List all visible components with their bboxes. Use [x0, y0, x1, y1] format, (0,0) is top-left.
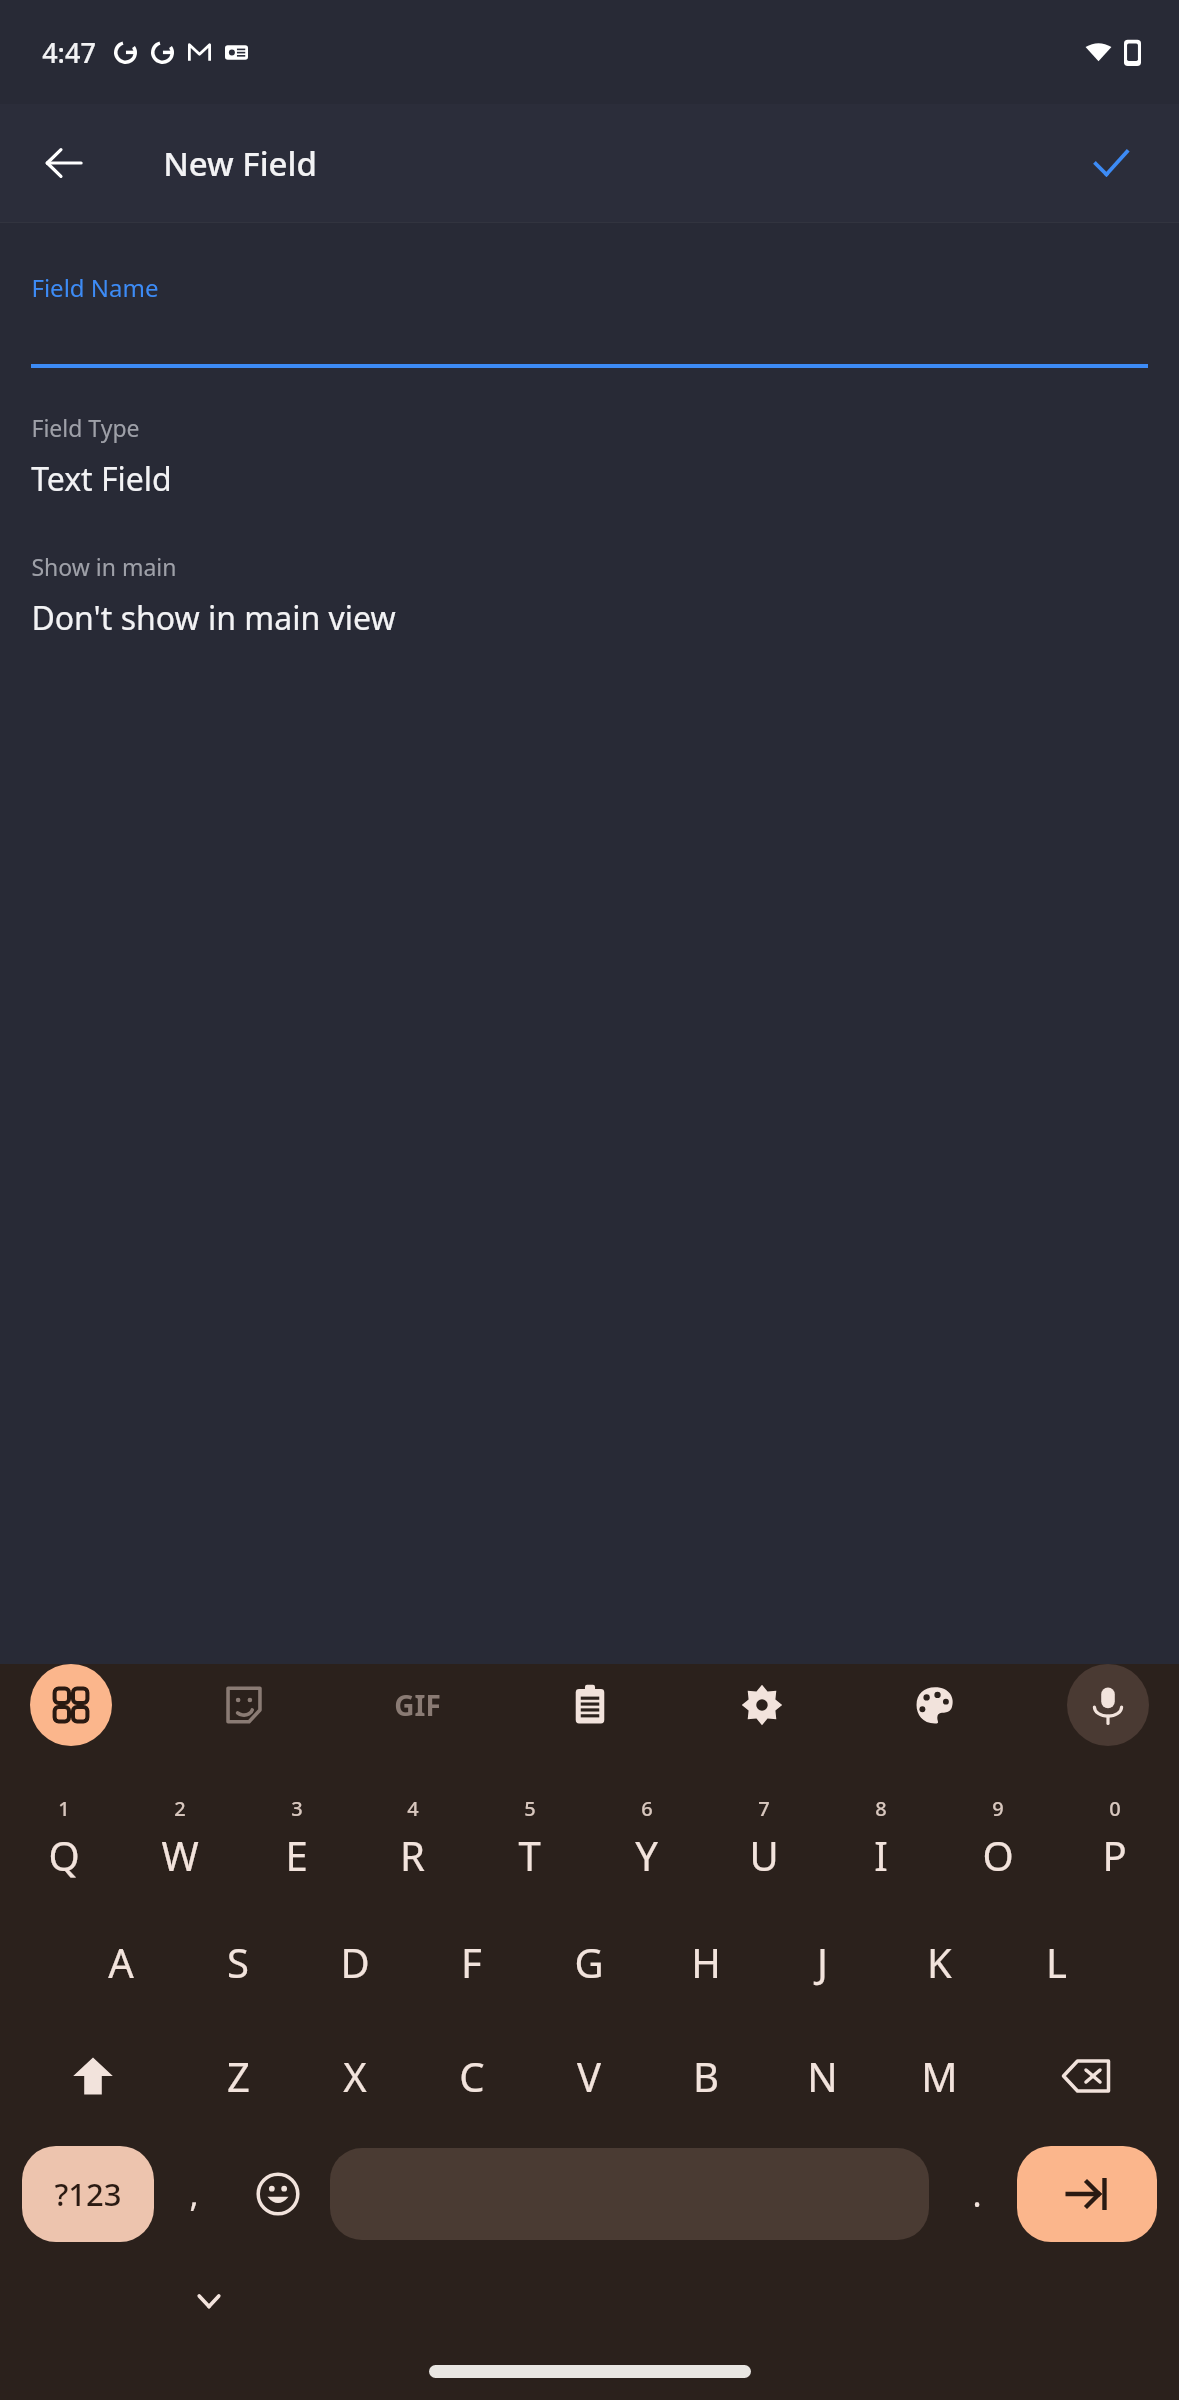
button[interactable]: 6 — [588, 1782, 705, 1894]
button[interactable]: Comma — [154, 2142, 234, 2246]
button[interactable]: Enter — [1017, 2146, 1157, 2242]
button[interactable]: Sticker — [203, 1664, 285, 1746]
staticText: N — [807, 2049, 838, 2103]
button[interactable]: Field Type — [31, 412, 1148, 501]
staticText: G — [574, 1935, 604, 1989]
staticText: 0 — [1109, 1795, 1121, 1822]
button[interactable]: G — [530, 1916, 647, 2008]
button[interactable]: F — [413, 1916, 530, 2008]
staticText: U — [749, 1828, 779, 1882]
button[interactable]: 4 — [354, 1782, 471, 1894]
button[interactable]: Theme — [894, 1664, 976, 1746]
staticText: O — [982, 1828, 1014, 1882]
staticText: A — [108, 1935, 134, 1989]
button[interactable]: X — [296, 2030, 413, 2122]
button[interactable]: C — [413, 2030, 530, 2122]
staticText: Text Field — [31, 457, 172, 501]
staticText: V — [577, 2049, 601, 2103]
button[interactable]: A — [63, 1916, 179, 2008]
staticText: D — [340, 1935, 370, 1989]
staticText: . — [972, 2171, 982, 2217]
staticText: T — [518, 1828, 541, 1882]
button[interactable]: Shift — [6, 2030, 180, 2122]
staticText: C — [459, 2049, 485, 2103]
staticText: F — [461, 1935, 482, 1989]
staticText: S — [227, 1935, 249, 1989]
staticText: 9 — [992, 1795, 1004, 1822]
staticText: E — [285, 1828, 308, 1882]
button[interactable]: 1 — [6, 1782, 122, 1894]
button[interactable]: Emoji — [234, 2142, 322, 2246]
staticText: Q — [48, 1828, 80, 1882]
button[interactable]: Save — [1075, 127, 1147, 199]
button[interactable]: Hide keyboard — [180, 2272, 238, 2330]
staticText: 7 — [758, 1795, 770, 1822]
staticText: 8 — [875, 1795, 887, 1822]
staticText: 1 — [58, 1795, 70, 1822]
button[interactable]: 0 — [1056, 1782, 1173, 1894]
staticText: Field Name — [31, 271, 159, 304]
button[interactable]: Toolbox — [30, 1664, 112, 1746]
button[interactable]: Back — [28, 127, 100, 199]
button[interactable]: 3 — [238, 1782, 354, 1894]
staticText: Show in main — [31, 551, 177, 582]
button[interactable]: ?123 — [22, 2146, 154, 2242]
staticText: ?123 — [54, 2173, 122, 2215]
button[interactable]: 2 — [122, 1782, 238, 1894]
staticText: Field Type — [31, 412, 140, 443]
button[interactable]: 7 — [705, 1782, 822, 1894]
staticText: X — [343, 2049, 367, 2103]
button[interactable]: Backspace — [998, 2030, 1173, 2122]
staticText: Y — [635, 1828, 658, 1882]
staticText: L — [1046, 1935, 1067, 1989]
staticText: W — [161, 1828, 199, 1882]
staticText: 3 — [291, 1795, 303, 1822]
button[interactable]: H — [647, 1916, 764, 2008]
staticText: I — [874, 1828, 888, 1882]
staticText: Z — [227, 2049, 250, 2103]
button[interactable]: Field Name — [31, 271, 1148, 368]
button[interactable]: Space — [330, 2148, 929, 2240]
staticText: J — [817, 1935, 828, 1989]
button[interactable]: B — [647, 2030, 764, 2122]
button[interactable]: V — [530, 2030, 647, 2122]
staticText: , — [189, 2171, 199, 2217]
button[interactable]: Z — [180, 2030, 296, 2122]
button[interactable]: J — [764, 1916, 881, 2008]
button[interactable]: S — [179, 1916, 296, 2008]
button[interactable]: Settings — [721, 1664, 803, 1746]
staticText: P — [1102, 1828, 1127, 1882]
button[interactable]: 8 — [822, 1782, 939, 1894]
staticText: 2 — [174, 1795, 186, 1822]
button[interactable]: Period — [937, 2142, 1017, 2246]
staticText: 5 — [524, 1795, 536, 1822]
staticText: M — [921, 2049, 958, 2103]
button[interactable]: GIF — [376, 1664, 458, 1746]
staticText: K — [927, 1935, 952, 1989]
staticText: Don't show in main view — [31, 596, 396, 640]
staticText: 4 — [407, 1795, 419, 1822]
button[interactable]: N — [764, 2030, 881, 2122]
staticText: 6 — [641, 1795, 653, 1822]
staticText: 4:47 — [42, 34, 96, 71]
button[interactable]: D — [296, 1916, 413, 2008]
button[interactable]: Show in main — [31, 551, 1148, 640]
staticText: R — [400, 1828, 425, 1882]
staticText: H — [691, 1935, 721, 1989]
staticText: New Field — [163, 141, 317, 186]
staticText: B — [693, 2049, 719, 2103]
button[interactable]: L — [998, 1916, 1115, 2008]
button[interactable]: K — [881, 1916, 998, 2008]
button[interactable]: 9 — [939, 1782, 1056, 1894]
button[interactable]: Voice input — [1067, 1664, 1149, 1746]
button[interactable]: Clipboard — [549, 1664, 631, 1746]
button[interactable]: 5 — [471, 1782, 588, 1894]
staticText: GIF — [394, 1686, 441, 1724]
button[interactable]: M — [881, 2030, 998, 2122]
